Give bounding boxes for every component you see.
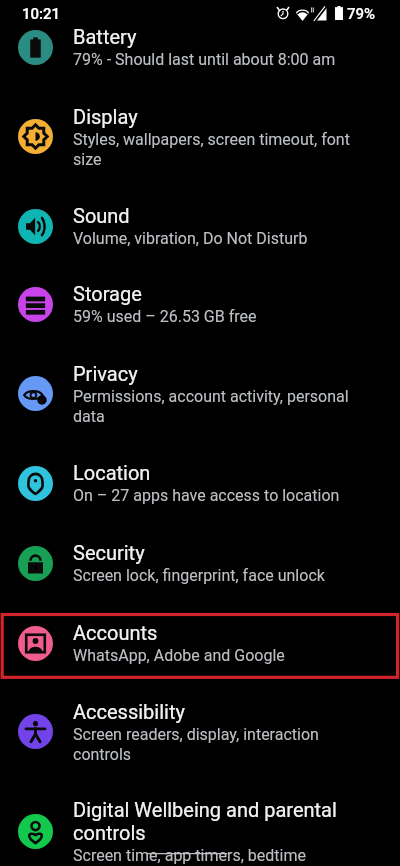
staticText: WhatsApp, Adobe and Google	[73, 646, 285, 665]
button[interactable]: Battery	[0, 7, 400, 87]
staticText: Styles, wallpapers, screen timeout, font…	[73, 130, 363, 168]
staticText: Display	[73, 105, 138, 128]
staticText: 79% - Should last until about 8:00 am	[73, 50, 336, 69]
button[interactable]: Security	[0, 523, 400, 603]
button[interactable]: Privacy	[0, 344, 400, 443]
staticText: Screen lock, fingerprint, face unlock	[73, 566, 325, 585]
staticText: Battery	[73, 25, 137, 48]
staticText: Screen readers, display, interaction con…	[73, 725, 363, 763]
button[interactable]: Location	[0, 443, 400, 523]
staticText: On – 27 apps have access to location	[73, 486, 340, 505]
button[interactable]: Digital Wellbeing and parental controls	[0, 780, 400, 866]
staticText: 59% used – 26.53 GB free	[73, 307, 257, 326]
staticText: Permissions, account activity, personal …	[73, 387, 363, 425]
staticText: Volume, vibration, Do Not Disturb	[73, 229, 308, 248]
staticText: Accessibility	[73, 700, 185, 723]
staticText: Accounts	[73, 621, 158, 644]
staticText: Security	[73, 541, 145, 564]
staticText: Storage	[73, 282, 142, 305]
button[interactable]: Display	[0, 87, 400, 186]
staticText: 79%	[347, 5, 376, 23]
button[interactable]: Sound	[0, 186, 400, 266]
staticText: 10:21	[22, 5, 61, 23]
button[interactable]: Accessibility	[0, 682, 400, 781]
button[interactable]: Accounts	[0, 603, 400, 683]
staticText: Privacy	[73, 362, 138, 385]
staticText: Screen time, app timers, bedtime	[73, 846, 306, 865]
button[interactable]: Storage	[0, 264, 400, 344]
staticText: Sound	[73, 204, 130, 227]
staticText: Digital Wellbeing and parental controls	[73, 798, 363, 844]
staticText: Location	[73, 461, 151, 484]
